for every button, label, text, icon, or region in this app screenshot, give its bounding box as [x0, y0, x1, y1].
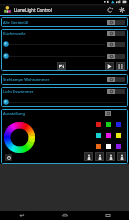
staticText: Stehlampe Wohnzimmer	[3, 77, 50, 82]
button[interactable]: Toggle	[107, 20, 125, 25]
button[interactable]: Scene	[95, 152, 104, 161]
staticText: LianeLight Control	[14, 7, 52, 13]
button[interactable]: Settings	[116, 4, 128, 15]
button[interactable]: Toggle	[107, 77, 125, 82]
button[interactable]: Recents	[86, 211, 129, 220]
staticText: Licht Esszimmer	[3, 89, 34, 94]
button[interactable]: Toggle	[107, 89, 125, 94]
staticText: Ausstellung	[3, 111, 26, 116]
button[interactable]: Pause	[116, 62, 125, 70]
button[interactable]: Scene	[117, 152, 126, 161]
button[interactable]: Toggle	[107, 54, 125, 59]
button[interactable]: Scene	[84, 152, 93, 161]
button[interactable]: Refresh	[104, 4, 116, 15]
button[interactable]: Preset	[105, 111, 111, 116]
button[interactable]: Home	[43, 211, 86, 220]
button[interactable]: Toggle	[107, 31, 125, 36]
button[interactable]: Scene	[106, 152, 115, 161]
button[interactable]: Toggle	[107, 42, 125, 47]
button[interactable]: Play	[105, 62, 114, 70]
button[interactable]: Image	[57, 62, 66, 70]
staticText: Küchenzeile	[3, 31, 26, 36]
button[interactable]: Back	[0, 211, 43, 220]
button[interactable]: Power	[5, 154, 12, 161]
staticText: Alle Geräte(4)	[3, 20, 29, 25]
